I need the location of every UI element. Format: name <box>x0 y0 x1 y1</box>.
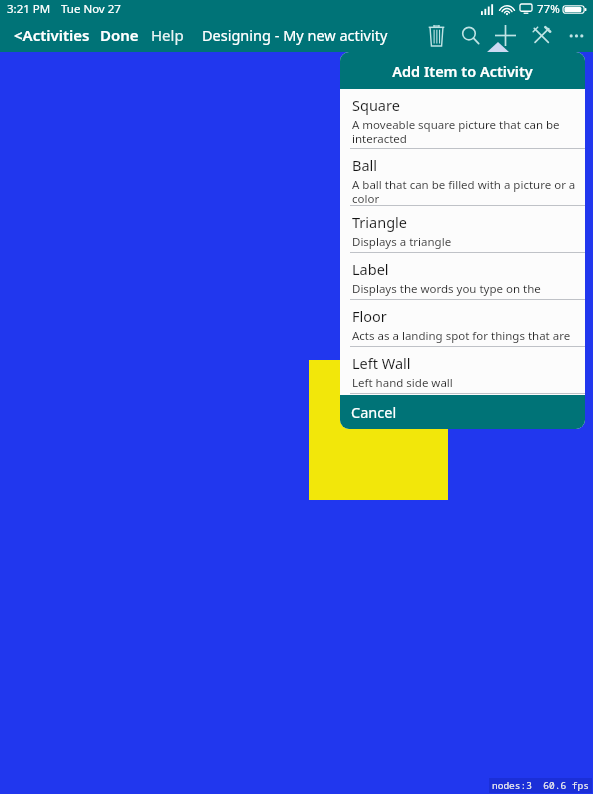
button[interactable]: Label <box>340 253 585 299</box>
button[interactable]: Square item on canvas <box>309 360 448 500</box>
staticText: Cancel <box>351 402 397 422</box>
staticText: Left hand side wall <box>352 375 453 391</box>
staticText: Done <box>100 25 139 45</box>
button[interactable]: Square <box>340 89 585 148</box>
staticText: Triangle <box>352 212 407 232</box>
staticText: Displays a triangle <box>352 234 452 250</box>
staticText: <Activities <box>14 25 90 45</box>
button[interactable]: Triangle <box>340 206 585 252</box>
staticText: A moveable square picture that can be in… <box>352 117 577 148</box>
staticText: 3:21 PM <box>7 1 51 17</box>
button[interactable]: Add item <box>487 18 523 52</box>
staticText: Square <box>352 95 400 115</box>
button[interactable]: Search <box>453 18 487 52</box>
staticText: Label <box>352 259 389 279</box>
button[interactable]: Floor <box>340 300 585 346</box>
staticText: Designing - My new activity <box>202 25 388 45</box>
staticText: Help <box>151 25 184 45</box>
button[interactable]: Tools <box>523 18 559 52</box>
button[interactable]: Done <box>94 21 145 49</box>
button[interactable]: More options <box>559 18 593 52</box>
staticText: 77% <box>537 1 560 17</box>
button[interactable]: Cancel <box>340 395 585 429</box>
staticText: A ball that can be filled with a picture… <box>352 177 577 205</box>
staticText: nodes:3 60.6 fps <box>492 779 589 792</box>
staticText: Left Wall <box>352 353 411 373</box>
button[interactable]: Left Wall <box>340 347 585 393</box>
button[interactable]: Ball <box>340 149 585 205</box>
staticText: Ball <box>352 155 378 175</box>
button[interactable]: Delete <box>419 18 453 52</box>
staticText: Acts as a landing spot for things that a… <box>352 328 577 346</box>
staticText: Tue Nov 27 <box>61 1 121 17</box>
staticText: Displays the words you type on the activ… <box>352 281 577 299</box>
button[interactable]: <Activities <box>0 21 94 49</box>
staticText: Floor <box>352 306 387 326</box>
button[interactable]: Help <box>145 21 190 49</box>
staticText: Add Item to Activity <box>392 61 533 81</box>
